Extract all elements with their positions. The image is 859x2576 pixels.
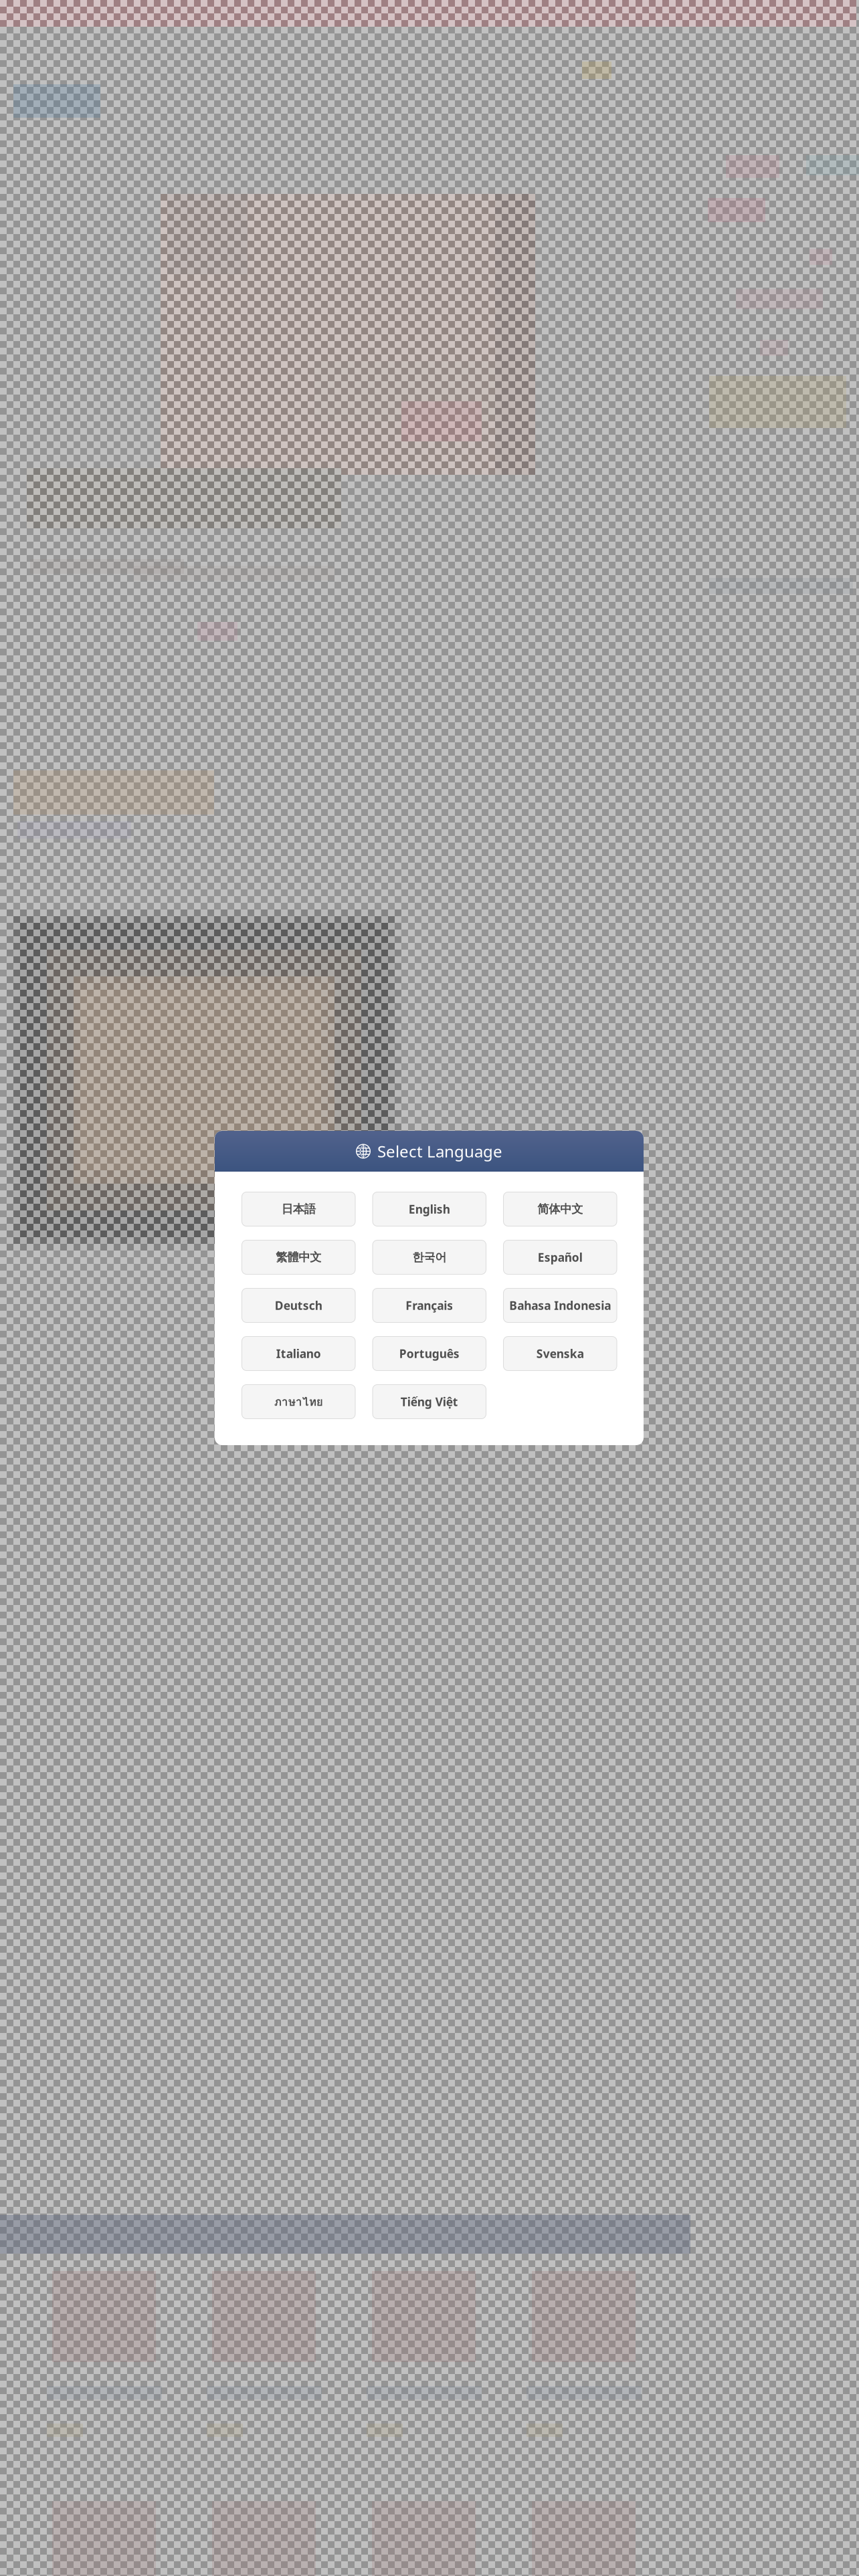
button[interactable]: Deutsch bbox=[242, 1288, 355, 1322]
button[interactable]: Português bbox=[373, 1336, 486, 1371]
button[interactable]: 简体中文 bbox=[503, 1192, 617, 1226]
staticText: Bahasa Indonesia bbox=[509, 1298, 611, 1313]
staticText: Português bbox=[399, 1346, 459, 1361]
staticText: 한국어 bbox=[412, 1250, 446, 1264]
staticText: Italiano bbox=[276, 1346, 321, 1361]
staticText: 简体中文 bbox=[537, 1202, 583, 1216]
staticText: 繁體中文 bbox=[276, 1250, 321, 1264]
staticText: Deutsch bbox=[275, 1298, 322, 1313]
button[interactable]: 한국어 bbox=[373, 1240, 486, 1274]
button[interactable]: 繁體中文 bbox=[242, 1240, 355, 1274]
staticText: English bbox=[409, 1201, 450, 1217]
button[interactable]: English bbox=[373, 1192, 486, 1226]
staticText: Svenska bbox=[536, 1346, 584, 1361]
staticText: Español bbox=[538, 1250, 583, 1265]
staticText: Tiếng Việt bbox=[401, 1394, 458, 1409]
staticText: 日本語 bbox=[282, 1202, 316, 1216]
button[interactable]: Bahasa Indonesia bbox=[503, 1288, 617, 1322]
button[interactable]: Italiano bbox=[242, 1336, 355, 1371]
button[interactable]: ภาษาไทย bbox=[242, 1385, 355, 1419]
button[interactable]: Tiếng Việt bbox=[373, 1385, 486, 1419]
staticText: Français bbox=[406, 1298, 453, 1313]
button[interactable]: Svenska bbox=[503, 1336, 617, 1371]
button[interactable]: Español bbox=[503, 1240, 617, 1274]
button[interactable]: Français bbox=[373, 1288, 486, 1322]
staticText: ภาษาไทย bbox=[274, 1393, 323, 1411]
staticText: Select Language bbox=[377, 1141, 502, 1162]
button[interactable]: 日本語 bbox=[242, 1192, 355, 1226]
